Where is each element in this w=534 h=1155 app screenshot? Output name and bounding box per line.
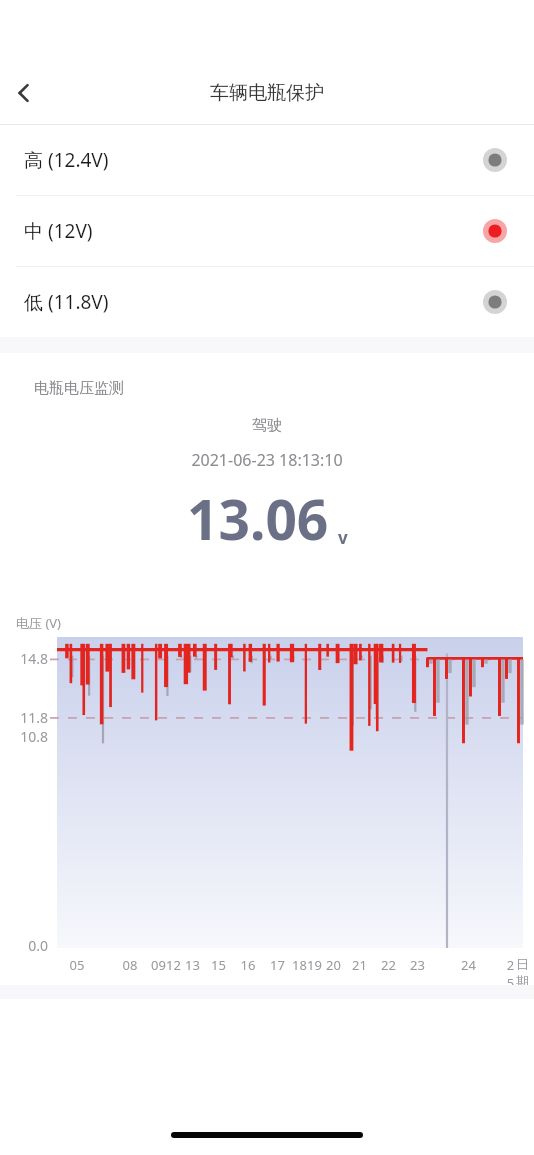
staticText: 18 <box>292 956 307 974</box>
staticText: 电瓶电压监测 <box>34 379 124 398</box>
staticText: 16 <box>233 956 263 974</box>
staticText: 驾驶 <box>0 416 534 435</box>
staticText: v <box>338 526 348 549</box>
staticText: 日期 <box>516 956 528 990</box>
staticText: 15 <box>204 956 233 974</box>
button[interactable]: 高 (12.4V) <box>0 125 534 195</box>
staticText: 21 <box>345 956 374 974</box>
staticText: 09 <box>151 956 166 974</box>
staticText: 25 <box>505 956 516 992</box>
staticText: 19 <box>307 956 322 974</box>
staticText: 11.8 <box>0 708 48 727</box>
button[interactable]: 中 (12V) <box>0 196 534 266</box>
staticText: 电压 (V) <box>16 614 61 632</box>
staticText: 24 <box>432 956 505 974</box>
staticText: 23 <box>403 956 432 974</box>
staticText: 20 <box>322 956 345 974</box>
staticText: 22 <box>374 956 403 974</box>
staticText: 高 (12.4V) <box>24 147 480 173</box>
staticText: 中 (12V) <box>24 218 480 244</box>
staticText: 14.8 <box>0 649 48 668</box>
staticText: 13.06 <box>187 481 329 556</box>
staticText: 2021-06-23 18:13:10 <box>0 449 534 471</box>
button[interactable]: 低 (11.8V) <box>0 267 534 337</box>
staticText: 低 (11.8V) <box>24 289 480 315</box>
staticText: 08 <box>109 956 151 974</box>
button[interactable]: Back <box>0 69 48 117</box>
staticText: 05 <box>45 956 109 974</box>
staticText: 车辆电瓶保护 <box>210 81 324 105</box>
staticText: 0.0 <box>0 936 48 955</box>
staticText: 12 <box>166 956 181 974</box>
staticText: 17 <box>263 956 292 974</box>
staticText: 13 <box>181 956 204 974</box>
staticText: 10.8 <box>0 727 48 746</box>
